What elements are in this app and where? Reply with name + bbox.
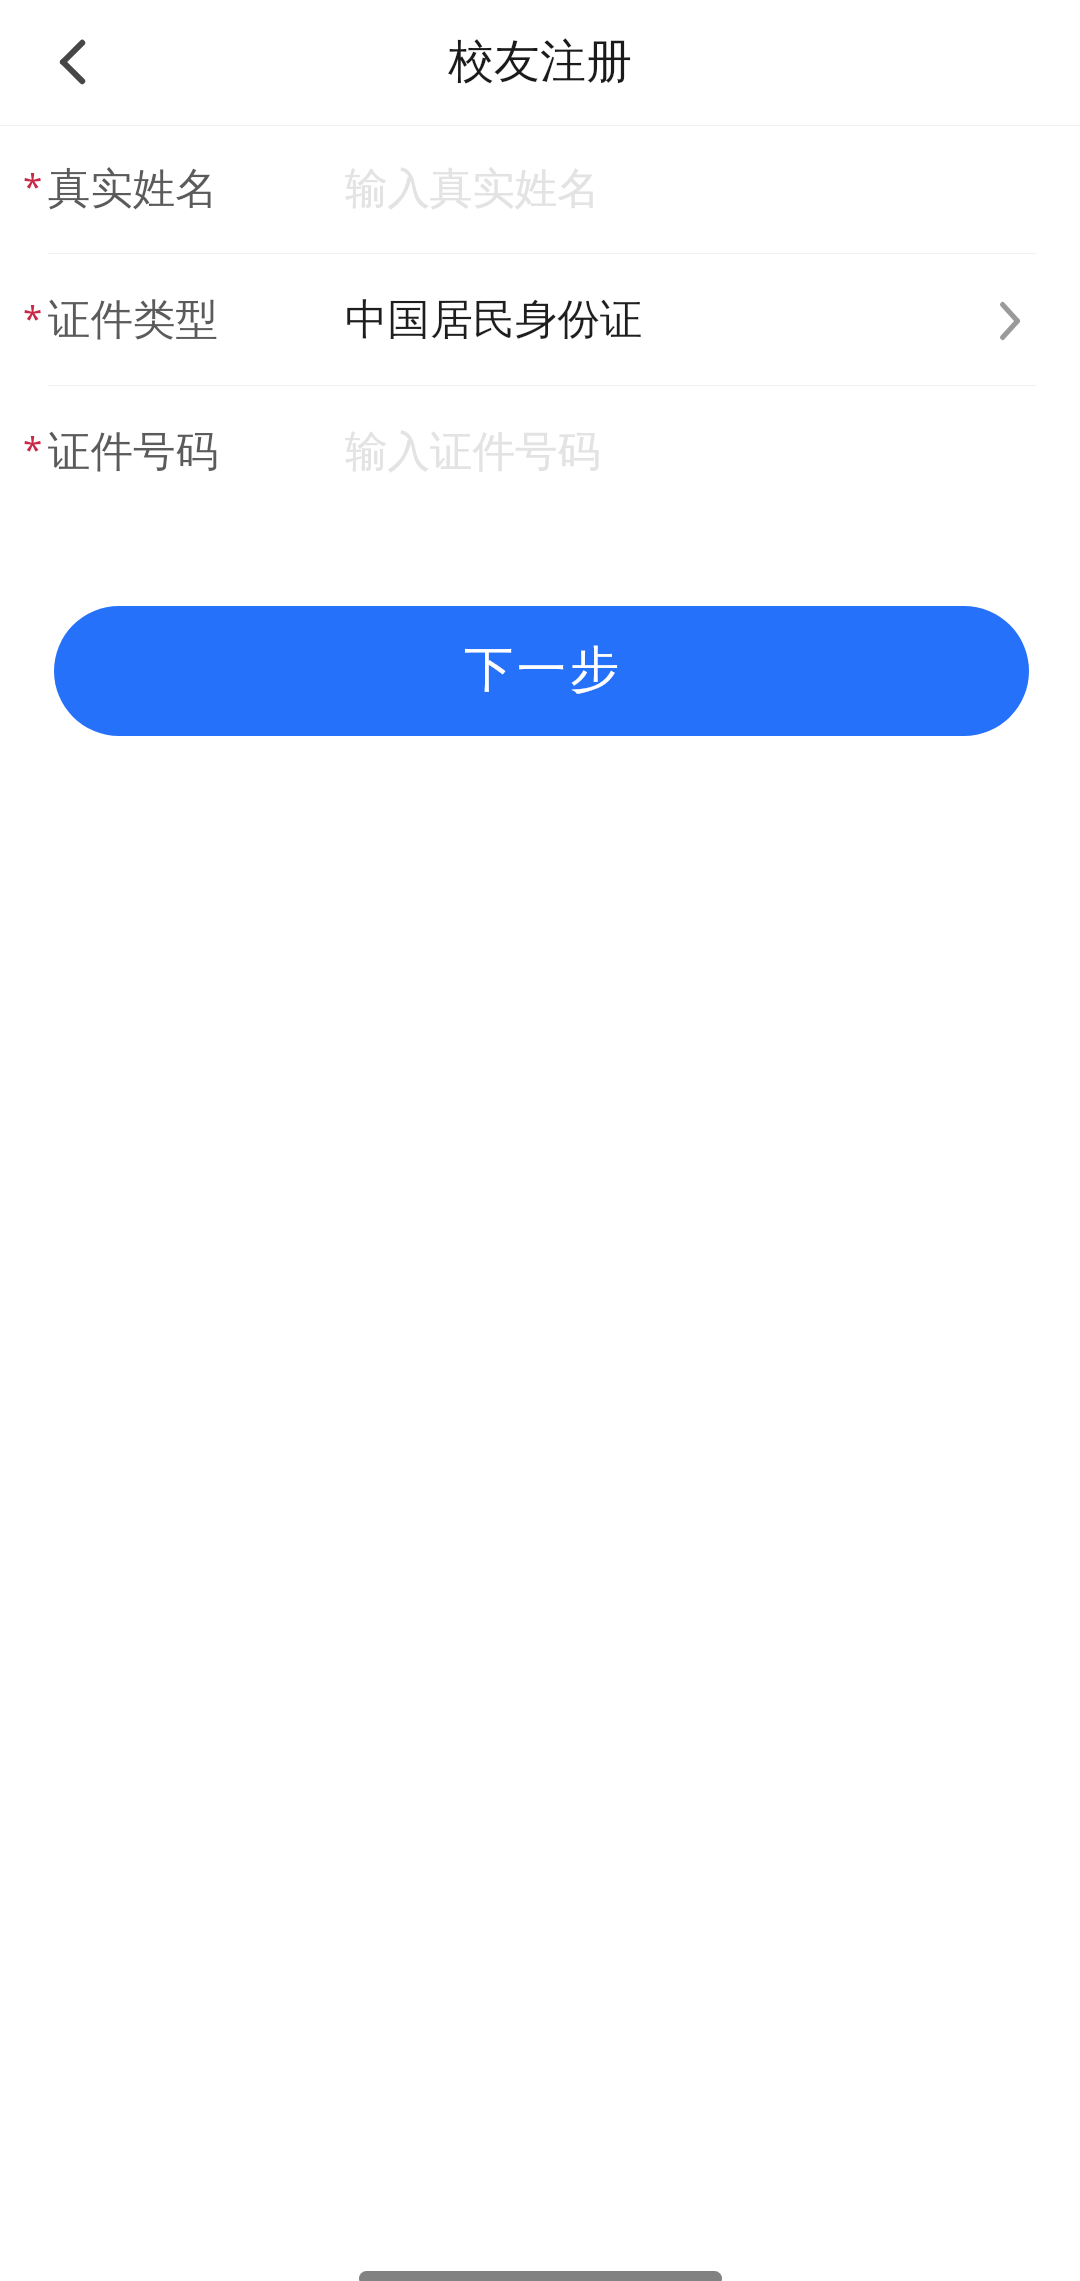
staticText: *: [23, 294, 43, 342]
staticText: 真实姓名: [48, 162, 218, 216]
button[interactable]: Back: [0, 0, 125, 125]
button[interactable]: *: [0, 386, 1080, 513]
staticText: *: [23, 162, 43, 210]
staticText: 输入真实姓名: [345, 162, 600, 216]
button[interactable]: *: [0, 126, 1080, 253]
staticText: 中国居民身份证: [345, 293, 643, 347]
staticText: 证件类型: [48, 293, 218, 347]
staticText: 校友注册: [448, 33, 632, 91]
staticText: 下一步: [462, 639, 621, 701]
staticText: 证件号码: [48, 425, 218, 479]
button[interactable]: 下一步: [54, 606, 1029, 736]
staticText: 输入证件号码: [345, 425, 600, 479]
button[interactable]: *: [0, 254, 1080, 385]
staticText: *: [23, 425, 43, 473]
